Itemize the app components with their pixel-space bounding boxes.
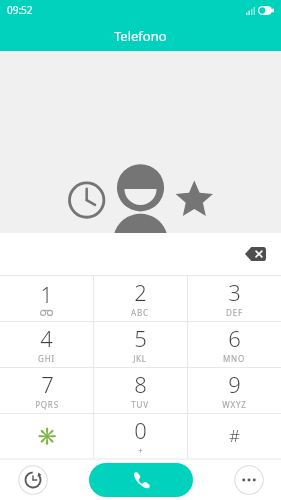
button[interactable]: ✳ — [0, 414, 93, 459]
staticText: 6 — [228, 323, 241, 353]
staticText: 4 — [40, 323, 53, 353]
staticText: JKL — [133, 353, 147, 364]
staticText: + — [138, 445, 144, 456]
staticText: 2 — [134, 277, 147, 307]
button[interactable]: 9 — [187, 368, 281, 413]
staticText: WXYZ — [222, 399, 247, 410]
staticText: 3 — [228, 277, 241, 307]
staticText: 1 — [40, 279, 53, 309]
staticText: ABC — [131, 307, 149, 318]
button[interactable]: 3 — [187, 276, 281, 321]
button[interactable]: More options — [231, 462, 267, 498]
button[interactable]: 0 — [93, 414, 187, 459]
staticText: MNO — [223, 353, 245, 364]
staticText: # — [229, 424, 240, 447]
button[interactable]: 4 — [0, 322, 93, 367]
button[interactable]: 1 — [0, 276, 93, 321]
button[interactable]: 8 — [93, 368, 187, 413]
button[interactable]: 5 — [93, 322, 187, 367]
staticText: 09:52 — [7, 3, 33, 17]
button[interactable]: 7 — [0, 368, 93, 413]
button[interactable]: Call history — [15, 462, 51, 498]
staticText: 9 — [228, 369, 241, 399]
button[interactable]: Backspace — [240, 241, 270, 267]
staticText: DEF — [226, 307, 243, 318]
button[interactable]: 6 — [187, 322, 281, 367]
button[interactable]: # — [187, 414, 281, 459]
staticText: PQRS — [35, 399, 59, 410]
staticText: 0 — [134, 415, 147, 445]
button[interactable]: 2 — [93, 276, 187, 321]
staticText: Telefono — [114, 27, 167, 45]
button[interactable]: Call — [89, 463, 193, 497]
staticText: GHI — [38, 353, 55, 364]
staticText: TUV — [131, 399, 149, 410]
staticText: 8 — [134, 369, 147, 399]
staticText: 5 — [134, 323, 147, 353]
staticText: 7 — [41, 369, 54, 399]
staticText: ✳ — [36, 426, 58, 446]
